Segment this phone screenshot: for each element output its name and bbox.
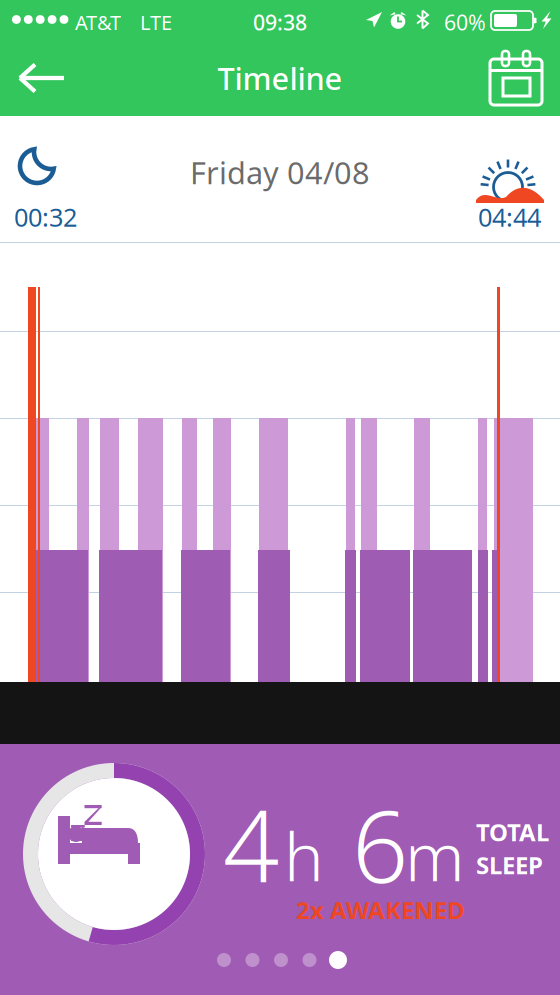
staticText: 04:44 [478, 200, 541, 234]
staticText: AT&T [75, 9, 121, 36]
staticText: 09:38 [253, 8, 307, 36]
button[interactable]: Back [0, 40, 84, 116]
staticText: SLEEP [476, 849, 543, 881]
button[interactable]: Calendar [472, 40, 560, 116]
staticText: Timeline [217, 58, 342, 98]
staticText: 60% [444, 8, 486, 36]
staticText: 6 [352, 779, 408, 910]
staticText: Friday 04/08 [190, 152, 370, 193]
staticText: m [405, 811, 465, 899]
staticText: h [284, 811, 324, 899]
staticText: 4 [223, 779, 279, 910]
staticText: LTE [140, 9, 172, 36]
staticText: TOTAL [476, 816, 549, 848]
staticText: 2x AWAKENED [296, 894, 465, 926]
staticText: 00:32 [14, 200, 77, 234]
